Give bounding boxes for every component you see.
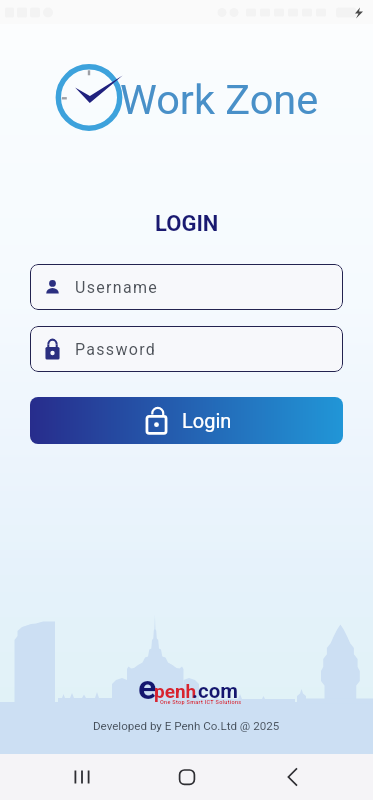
button[interactable]: Back [269, 754, 315, 800]
staticText: Developed by E Penh Co.Ltd @ 2025 [93, 719, 280, 733]
staticText: e [138, 667, 157, 707]
staticText: Username [75, 278, 158, 297]
button[interactable]: Password [30, 326, 343, 372]
staticText: Login [182, 409, 232, 432]
staticText: .com [192, 679, 238, 703]
button[interactable]: Recent apps [59, 754, 105, 800]
staticText: Work Zone [120, 75, 319, 124]
staticText: LOGIN [155, 211, 219, 237]
staticText: penh [154, 680, 197, 702]
staticText: Password [75, 340, 157, 359]
button[interactable]: Home [164, 754, 210, 800]
button[interactable]: Login [30, 397, 343, 444]
button[interactable]: Username [30, 264, 343, 310]
staticText: One Stop Smart ICT Solutions [160, 699, 242, 705]
